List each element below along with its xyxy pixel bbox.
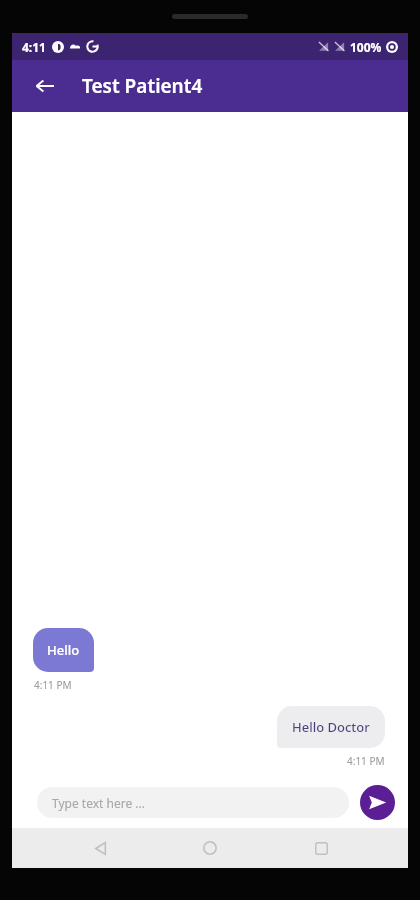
button[interactable]: Home [187,828,233,868]
button[interactable]: Hello [33,628,94,672]
staticText: 4:11 PM [34,678,72,692]
button[interactable]: Back [77,828,123,868]
button[interactable]: Back [30,71,60,101]
staticText: Test Patient4 [82,73,203,99]
staticText: Hello [47,641,80,659]
staticText: 4:11 [22,39,46,55]
button[interactable]: Send [360,785,395,820]
staticText: Type text here ... [52,795,145,811]
button[interactable]: Hello Doctor [277,706,385,748]
staticText: 4:11 PM [347,754,385,768]
button[interactable]: Recent apps [298,828,344,868]
staticText: Hello Doctor [292,718,370,736]
button[interactable]: Type text here ... [37,787,349,818]
staticText: 100% [350,39,382,55]
